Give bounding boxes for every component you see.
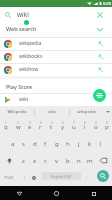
staticText: 9	[95, 121, 97, 125]
staticText: ,	[24, 173, 26, 180]
button[interactable]: c	[40, 152, 51, 169]
button[interactable]: 8	[79, 118, 90, 135]
button[interactable]: wikibooks	[0, 50, 112, 63]
staticText: r	[39, 123, 42, 131]
staticText: 0	[106, 121, 108, 125]
button[interactable]: 3	[24, 118, 35, 135]
button[interactable]: 4	[35, 118, 46, 135]
button[interactable]: b	[62, 152, 73, 169]
button[interactable]: Change language	[28, 169, 40, 186]
button[interactable]: Backspace	[95, 152, 112, 169]
staticText: j	[78, 140, 80, 148]
button[interactable]: k	[84, 135, 95, 152]
button[interactable]: d	[29, 135, 40, 152]
staticText: p	[105, 123, 109, 131]
staticText: x	[33, 157, 37, 165]
staticText: i	[84, 123, 86, 131]
staticText: wikibooks	[19, 53, 43, 60]
button[interactable]: Recent apps	[75, 186, 112, 200]
staticText: s	[22, 140, 25, 148]
staticText: l	[100, 140, 102, 148]
staticText: wiki	[19, 96, 29, 103]
staticText: wiki	[48, 109, 56, 115]
button[interactable]: l	[95, 135, 106, 152]
staticText: k	[88, 140, 92, 148]
button[interactable]: 9	[90, 118, 101, 135]
button[interactable]: v	[51, 152, 62, 169]
button[interactable]: 2	[12, 118, 24, 135]
staticText: wikihow	[19, 66, 39, 73]
staticText: d	[33, 140, 37, 148]
button[interactable]: More suggestions	[103, 106, 112, 118]
staticText: wikipedia	[19, 40, 42, 47]
staticText: y	[61, 123, 65, 131]
button[interactable]: wiki	[0, 93, 112, 106]
staticText: 4	[40, 121, 42, 125]
button[interactable]: f	[40, 135, 51, 152]
staticText: 7	[73, 121, 75, 125]
button[interactable]: wikipedia	[70, 106, 103, 118]
staticText: m	[87, 157, 93, 165]
staticText: 2	[17, 121, 19, 125]
staticText: n	[77, 157, 81, 165]
button[interactable]: ?123	[0, 169, 18, 186]
button[interactable]: 5	[46, 118, 57, 135]
staticText: 1	[5, 121, 7, 125]
staticText: q	[4, 123, 8, 131]
staticText: .	[86, 173, 88, 180]
button[interactable]: Clear query	[93, 7, 106, 22]
staticText: 3	[29, 121, 31, 125]
button[interactable]: Web search	[0, 22, 112, 35]
button[interactable]: m	[84, 152, 95, 169]
staticText: Web search	[6, 25, 37, 32]
staticText: English (US)	[51, 174, 71, 179]
staticText: wikipedia	[77, 109, 96, 115]
button[interactable]: wikipedia	[0, 37, 112, 50]
staticText: g	[55, 140, 59, 148]
button[interactable]: h	[62, 135, 73, 152]
button[interactable]: 1	[0, 118, 12, 135]
button[interactable]: 7	[68, 118, 79, 135]
button[interactable]: n	[73, 152, 84, 169]
button[interactable]: Search	[97, 170, 109, 182]
staticText: o	[94, 123, 98, 131]
staticText: t	[50, 123, 53, 131]
staticText: Play Store	[6, 83, 33, 90]
staticText: a	[11, 140, 15, 148]
button[interactable]: Home	[38, 186, 75, 200]
staticText: ?123	[4, 175, 14, 181]
staticText: 5	[51, 121, 53, 125]
button[interactable]: z	[18, 152, 29, 169]
button[interactable]: Shift	[0, 152, 18, 169]
staticText: v	[55, 157, 59, 165]
button[interactable]: Back	[0, 186, 38, 200]
staticText: Wikipedia	[7, 109, 27, 115]
staticText: wiki	[17, 10, 29, 19]
button[interactable]: ,	[18, 169, 31, 186]
button[interactable]: 6	[57, 118, 68, 135]
button[interactable]: 0	[101, 118, 112, 135]
button[interactable]: Search	[4, 7, 12, 22]
staticText: h	[66, 140, 70, 148]
button[interactable]: Refine search	[93, 89, 106, 102]
button[interactable]: wiki	[35, 106, 69, 118]
staticText: u	[72, 123, 76, 131]
button[interactable]: Play Store	[0, 80, 112, 93]
button[interactable]: j	[73, 135, 84, 152]
button[interactable]: a	[7, 135, 18, 152]
button[interactable]: Wikipedia	[0, 106, 34, 118]
staticText: f	[44, 140, 47, 148]
staticText: 6	[62, 121, 64, 125]
staticText: 8	[84, 121, 86, 125]
staticText: 6:00	[103, 1, 111, 6]
staticText: w	[16, 123, 21, 131]
button[interactable]: x	[29, 152, 40, 169]
button[interactable]: English (US)	[41, 172, 81, 180]
staticText: z	[22, 157, 25, 165]
button[interactable]: g	[51, 135, 62, 152]
staticText: b	[66, 157, 70, 165]
button[interactable]: wikihow	[0, 63, 112, 76]
button[interactable]: s	[18, 135, 29, 152]
staticText: c	[44, 157, 47, 165]
